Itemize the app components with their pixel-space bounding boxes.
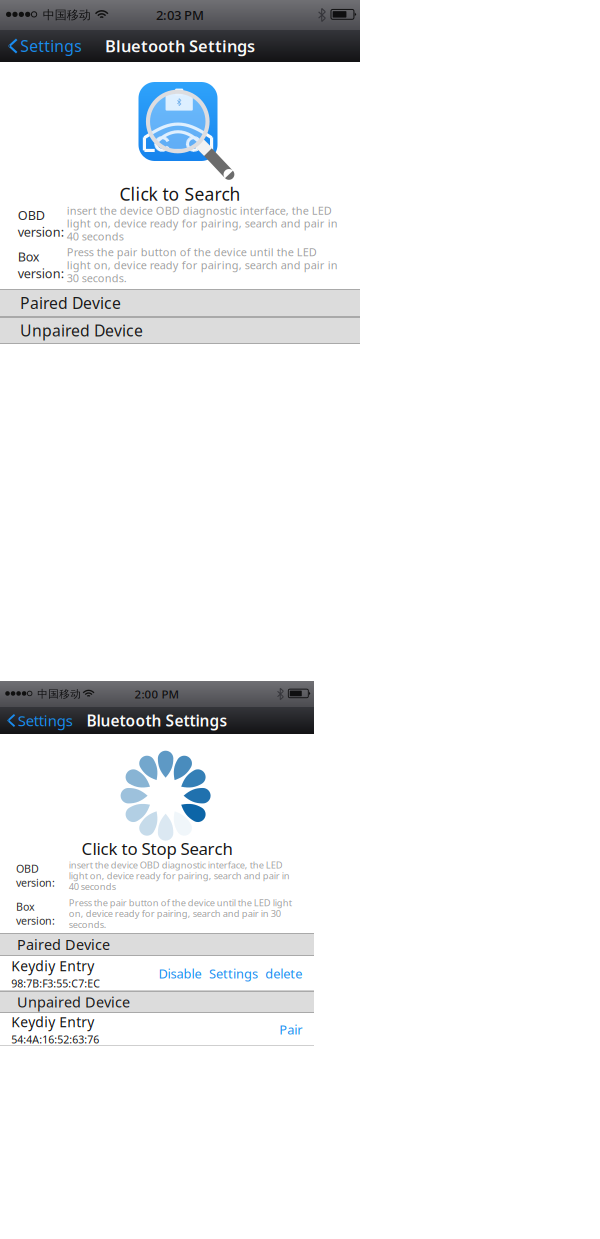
staticText: insert the device OBD diagnostic interfa… (69, 858, 290, 893)
button[interactable]: Disable (158, 961, 201, 986)
button[interactable]: Settings (0, 32, 82, 60)
staticText: Pair (279, 1021, 302, 1038)
staticText: Box version: (16, 899, 55, 928)
staticText: Bluetooth Settings (86, 710, 227, 731)
button[interactable]: Settings (209, 961, 258, 986)
staticText: Keydiy Entry (11, 956, 94, 975)
button[interactable]: delete (265, 961, 302, 986)
staticText: 54:4A:16:52:63:76 (11, 1032, 99, 1047)
staticText: Bluetooth Settings (105, 35, 255, 57)
staticText: Unpaired Device (20, 320, 143, 341)
staticText: delete (265, 965, 302, 982)
staticText: OBD version: (16, 861, 55, 890)
button[interactable]: Click to Search (0, 182, 360, 206)
staticText: Keydiy Entry (11, 1012, 94, 1031)
staticText: Unpaired Device (17, 992, 130, 1012)
staticText: 2:00 PM (134, 686, 179, 702)
staticText: Settings (20, 35, 82, 57)
staticText: Press the pair button of the device unti… (69, 896, 292, 931)
button[interactable]: Settings (0, 707, 73, 734)
staticText: OBD version: (18, 206, 64, 240)
staticText: 98:7B:F3:55:C7:EC (11, 976, 100, 991)
staticText: insert the device OBD diagnostic interfa… (67, 203, 338, 244)
staticText: Paired Device (17, 935, 110, 954)
staticText: Disable (158, 965, 201, 982)
staticText: Settings (18, 710, 73, 731)
staticText: Settings (209, 965, 258, 982)
staticText: Click to Search (119, 182, 240, 206)
staticText: Click to Stop Search (81, 837, 232, 860)
staticText: Box version: (18, 248, 64, 282)
staticText: Paired Device (20, 292, 121, 314)
staticText: Press the pair button of the device unti… (67, 245, 338, 285)
button[interactable]: Pair (279, 1017, 302, 1042)
button[interactable]: Click to Stop Search (0, 837, 314, 860)
button[interactable] (138, 82, 245, 189)
staticText: 2:03 PM (156, 6, 204, 24)
staticText: 中国移动 (43, 7, 91, 22)
button[interactable]: Stop search (121, 751, 211, 841)
staticText: 中国移动 (37, 687, 81, 701)
